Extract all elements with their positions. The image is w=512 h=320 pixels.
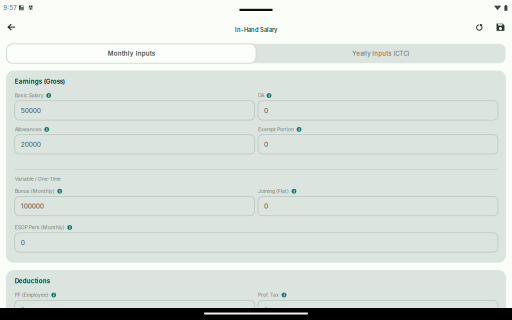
staticText: Earnings (Gross): [15, 78, 65, 85]
staticText: Deductions: [15, 277, 50, 285]
staticText: 20000: [21, 140, 41, 148]
staticText: 0: [264, 140, 268, 148]
staticText: Yearly Inputs (CTC): [352, 50, 409, 57]
staticText: Variable / One-Time: [15, 176, 61, 182]
staticText: Bonus (Monthly): [15, 188, 55, 194]
button[interactable]: Refresh: [469, 16, 490, 39]
staticText: 0: [21, 238, 25, 246]
staticText: In-Hand Salary: [235, 26, 277, 33]
button[interactable]: Save: [490, 16, 511, 39]
button[interactable]: Yearly Inputs (CTC): [256, 44, 505, 63]
staticText: 0: [264, 306, 268, 314]
staticText: PF (Employee): [15, 292, 49, 298]
staticText: Basic Salary: [15, 92, 44, 98]
staticText: DA: [258, 92, 264, 98]
button[interactable]: Back: [0, 16, 23, 39]
staticText: Joining (Flat): [258, 188, 289, 194]
staticText: Allowances: [15, 126, 42, 132]
staticText: 0: [21, 306, 25, 314]
staticText: Prof. Tax: [258, 292, 279, 298]
staticText: Exempt Portion: [258, 126, 294, 132]
staticText: ESOP Perk (Monthly): [15, 224, 65, 230]
staticText: 9:57: [3, 4, 16, 11]
button[interactable]: Monthly Inputs: [6, 44, 256, 63]
staticText: 0: [264, 202, 268, 210]
staticText: 100000: [21, 202, 44, 210]
staticText: Monthly Inputs: [108, 50, 155, 57]
staticText: 0: [264, 106, 268, 114]
staticText: 50000: [21, 106, 41, 114]
